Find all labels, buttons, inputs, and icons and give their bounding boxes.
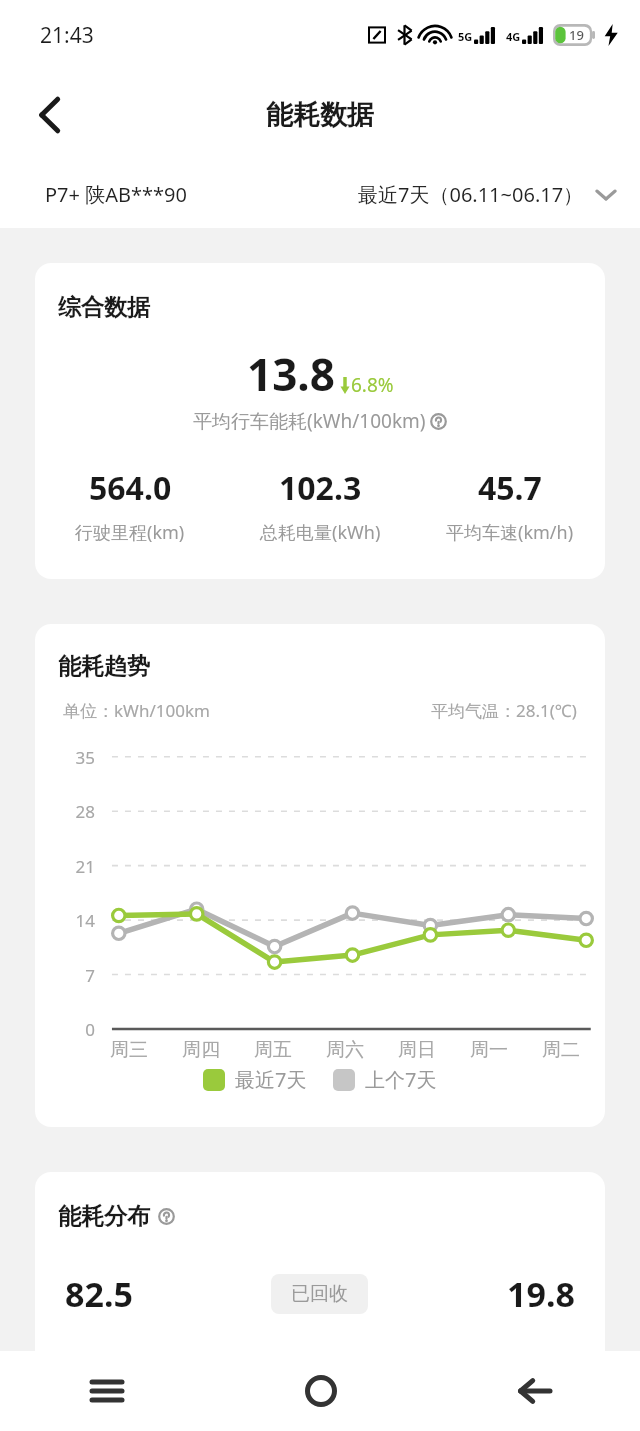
- staticText: 平均车速(km/h): [446, 520, 574, 545]
- staticText: 能耗数据: [266, 98, 374, 132]
- staticText: 19: [569, 26, 584, 44]
- button[interactable]: Back: [427, 1351, 640, 1431]
- staticText: 周日: [381, 1038, 453, 1062]
- staticText: 周三: [93, 1038, 165, 1062]
- button[interactable]: Recent apps: [0, 1351, 214, 1431]
- staticText: 4G: [506, 29, 521, 44]
- staticText: 6.8%: [351, 372, 394, 398]
- staticText: 19.8: [368, 1271, 575, 1317]
- button[interactable]: 最近7天（06.11~06.17）: [358, 181, 618, 208]
- staticText: 5G: [458, 29, 473, 44]
- staticText: 能耗趋势: [58, 652, 150, 681]
- staticText: 周一: [453, 1038, 525, 1062]
- staticText: 7: [35, 964, 95, 987]
- staticText: 周五: [237, 1038, 309, 1062]
- staticText: 能耗分布: [58, 1202, 150, 1231]
- staticText: 行驶里程(km): [75, 520, 185, 545]
- staticText: 上个7天: [365, 1066, 437, 1093]
- staticText: 最近7天（06.11~06.17）: [358, 181, 584, 208]
- staticText: 45.7: [478, 466, 542, 510]
- staticText: 14: [35, 909, 95, 932]
- staticText: 0: [35, 1018, 95, 1041]
- staticText: 平均行车能耗(kWh/100km): [193, 408, 426, 434]
- staticText: 周四: [165, 1038, 237, 1062]
- staticText: 总耗电量(kWh): [260, 520, 381, 545]
- button[interactable]: Back: [20, 85, 80, 145]
- staticText: 13.8: [247, 344, 335, 404]
- staticText: 已回收: [291, 1282, 348, 1306]
- staticText: 102.3: [279, 466, 362, 510]
- staticText: 28: [35, 800, 95, 823]
- staticText: 82.5: [65, 1271, 271, 1317]
- staticText: 单位：kWh/100km: [63, 699, 210, 722]
- staticText: 最近7天: [235, 1066, 307, 1093]
- staticText: 21:43: [40, 21, 94, 50]
- staticText: 564.0: [89, 466, 172, 510]
- staticText: 综合数据: [58, 293, 150, 322]
- staticText: 平均气温：28.1(℃): [431, 699, 577, 722]
- staticText: 21: [35, 855, 95, 878]
- button[interactable]: Home: [214, 1351, 427, 1431]
- staticText: 35: [35, 746, 95, 769]
- staticText: 周六: [309, 1038, 381, 1062]
- staticText: P7+ 陕AB***90: [45, 181, 187, 208]
- staticText: 周二: [525, 1038, 597, 1062]
